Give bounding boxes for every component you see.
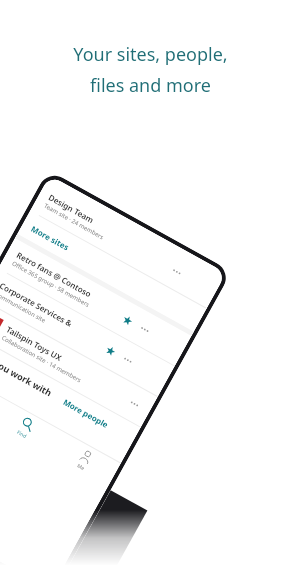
button[interactable]: More options	[125, 394, 144, 413]
staticText: Retro fans @ Contoso	[15, 249, 94, 299]
staticText: Find	[15, 429, 28, 440]
staticText: files and more	[90, 73, 211, 98]
button[interactable]: More options	[135, 320, 154, 339]
staticText: Design Team	[47, 191, 96, 225]
button[interactable]: TT	[0, 299, 158, 427]
staticText: Tailspin Toys UX	[4, 323, 64, 363]
button[interactable]: Retro fans @ Contoso	[0, 238, 192, 366]
staticText: Your sites, people,	[73, 42, 228, 67]
button[interactable]: Find	[0, 399, 62, 457]
button[interactable]: More options	[118, 351, 137, 370]
staticText: Me	[76, 462, 86, 472]
staticText: Corporate Services & Procurement	[0, 280, 106, 346]
staticText: People you work with	[0, 341, 55, 399]
staticText: More sites	[29, 223, 71, 253]
staticText: Collaboration site · 14 members	[0, 334, 83, 384]
button[interactable]: News	[0, 366, 3, 425]
button[interactable]: More people	[61, 396, 110, 430]
staticText: More people	[61, 396, 110, 430]
button[interactable]: More options	[167, 262, 186, 281]
staticText: Communication site	[0, 290, 47, 325]
button[interactable]: More sites	[17, 211, 207, 332]
staticText: Team site · 24 members	[42, 202, 105, 241]
button[interactable]: Corporate Services & Procurement	[0, 269, 175, 396]
staticText: Office 365 group · 58 members	[10, 259, 91, 309]
button[interactable]: Design Team	[30, 180, 224, 308]
button[interactable]: Me	[48, 431, 121, 490]
